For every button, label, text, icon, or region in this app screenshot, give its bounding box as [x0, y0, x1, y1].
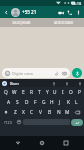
- button[interactable]: G: [40, 97, 48, 107]
- staticText: Q: [4, 89, 8, 96]
- button[interactable]: A: [4, 97, 13, 107]
- staticText: 14:18: [71, 1, 82, 6]
- button[interactable]: BLOQUEAR: [0, 18, 42, 27]
- button[interactable]: U: [51, 87, 59, 97]
- staticText: T: [38, 89, 41, 96]
- button[interactable]: ADICIONAR: [42, 18, 84, 27]
- button[interactable]: V: [36, 107, 45, 117]
- staticText: O: [69, 89, 73, 96]
- button[interactable]: ?123: [1, 118, 14, 126]
- button[interactable]: K: [64, 97, 72, 107]
- button[interactable]: Z: [11, 107, 19, 117]
- button[interactable]: J: [56, 97, 64, 107]
- staticText: L: [75, 99, 78, 106]
- staticText: +55 21 96692-22…: [22, 9, 56, 15]
- button[interactable]: Camera: [61, 70, 68, 77]
- button[interactable]: I: [59, 87, 67, 97]
- button[interactable]: D: [22, 97, 31, 107]
- button[interactable]: W: [10, 87, 19, 97]
- button[interactable]: E: [19, 87, 27, 97]
- button[interactable]: Backspace: [72, 107, 83, 117]
- staticText: P: [78, 89, 81, 96]
- staticText: U: [53, 89, 57, 96]
- button[interactable]: H: [48, 97, 56, 107]
- button[interactable]: Suggestion: [64, 81, 69, 86]
- button[interactable]: Enter: [71, 119, 83, 126]
- button[interactable]: Shift: [1, 107, 11, 117]
- button[interactable]: P: [75, 87, 83, 97]
- staticText: J: [59, 99, 61, 106]
- staticText: B: [48, 109, 52, 116]
- button[interactable]: Suggestion: [51, 81, 56, 86]
- button[interactable]: N: [54, 107, 63, 117]
- button[interactable]: O: [67, 87, 75, 97]
- staticText: BLOQUEAR: [12, 20, 31, 25]
- button[interactable]: F: [31, 97, 40, 107]
- button[interactable]: Attach: [53, 70, 60, 77]
- staticText: K: [67, 99, 70, 106]
- button[interactable]: Emoji: [4, 70, 11, 77]
- staticText: A: [7, 99, 11, 106]
- button[interactable]: Emoji keyboard: [14, 118, 23, 126]
- button[interactable]: Home: [36, 137, 48, 149]
- staticText: F: [34, 99, 37, 106]
- staticText: G: [42, 99, 46, 106]
- button[interactable]: Google search: [2, 81, 7, 86]
- staticText: C: [30, 109, 34, 116]
- button[interactable]: X: [19, 107, 27, 117]
- staticText: H: [50, 99, 54, 106]
- staticText: V: [39, 109, 42, 116]
- button[interactable]: Video call: [56, 8, 65, 17]
- staticText: E: [22, 89, 25, 96]
- button[interactable]: R: [27, 87, 35, 97]
- button[interactable]: Emoji: [2, 68, 70, 78]
- staticText: W: [12, 89, 17, 96]
- button[interactable]: C: [27, 107, 36, 117]
- button[interactable]: Bom: [10, 79, 51, 87]
- staticText: X: [22, 109, 25, 116]
- staticText: ADICIONAR: [54, 20, 73, 25]
- staticText: Bom: [10, 81, 19, 86]
- button[interactable]: Record voice message: [72, 68, 82, 78]
- button[interactable]: Y: [43, 87, 51, 97]
- button[interactable]: Recent apps: [60, 137, 72, 149]
- button[interactable]: More options: [74, 8, 82, 16]
- staticText: D: [25, 99, 29, 106]
- staticText: Z: [14, 109, 17, 116]
- button[interactable]: Back: [12, 137, 24, 149]
- staticText: Y: [46, 89, 49, 96]
- button[interactable]: Back: [2, 8, 10, 16]
- staticText: S: [16, 99, 19, 106]
- staticText: I: [62, 89, 64, 96]
- button[interactable]: Q: [1, 87, 10, 97]
- staticText: N: [57, 109, 61, 116]
- staticText: ?123: [4, 120, 12, 125]
- button[interactable]: Suggestion: [77, 81, 82, 86]
- staticText: Digite uma mensagem: [12, 71, 53, 76]
- button[interactable]: +55 21 96692-22…: [22, 6, 56, 18]
- button[interactable]: M: [63, 107, 72, 117]
- button[interactable]: L: [72, 97, 80, 107]
- button[interactable]: T: [35, 87, 43, 97]
- button[interactable]: Contact photo: [11, 8, 20, 17]
- staticText: M: [65, 109, 70, 116]
- button[interactable]: B: [45, 107, 54, 117]
- staticText: R: [30, 89, 33, 96]
- button[interactable]: S: [13, 97, 22, 107]
- button[interactable]: Voice call: [65, 8, 74, 17]
